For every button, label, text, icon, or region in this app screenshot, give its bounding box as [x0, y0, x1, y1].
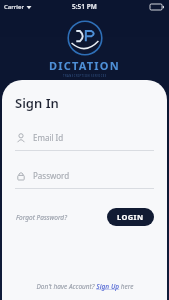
button[interactable]: Password [15, 170, 154, 189]
staticText: Email Id [33, 132, 64, 143]
other: Email [16, 133, 26, 143]
staticText: DICTATION [49, 58, 120, 73]
staticText: Don't have Account? Sign Up here [36, 282, 134, 291]
button[interactable]: LOGIN [107, 208, 154, 226]
button[interactable]: Don't have Account? Sign Up here [32, 280, 138, 293]
button[interactable]: Email [15, 132, 154, 151]
staticText: LOGIN [117, 212, 144, 222]
staticText: 5:51 PM [72, 2, 97, 11]
other: Password [16, 171, 26, 181]
staticText: Sign In [15, 94, 59, 112]
staticText: Carrier [4, 3, 24, 11]
button[interactable]: Forgot Password? [15, 210, 68, 225]
staticText: TRANSCRIPTION SERVICES [63, 74, 107, 78]
staticText: Forgot Password? [16, 213, 67, 222]
staticText: Password [33, 170, 70, 181]
